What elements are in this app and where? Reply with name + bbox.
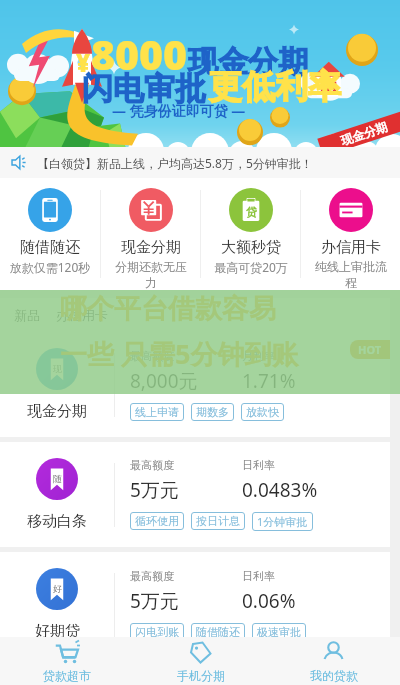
button[interactable]: 贷 [201,188,300,290]
staticText: 1分钟审批 [257,514,308,529]
staticText: HOT [358,342,382,357]
staticText: 新品 [14,307,40,323]
button[interactable]: 随借随还 [0,188,100,290]
staticText: 0.06% [242,588,296,614]
staticText: 日利率 [242,458,275,472]
staticText: 闪电审批 [82,69,206,108]
staticText: 手机分期 [177,668,225,683]
staticText: 5万元 [130,477,179,503]
staticText: 极速审批 [257,625,301,639]
staticText: 随借随还 [196,625,240,639]
button[interactable]: 好 [0,552,390,657]
staticText: 现金分期 [27,402,87,421]
staticText: 最高额度 [130,349,174,363]
staticText: 最高可贷20万 [210,259,292,275]
staticText: 日利率 [242,569,275,583]
staticText: 哪个平台借款容易 [60,292,276,326]
staticText: 最高额度 [130,569,174,583]
other: 公告 [11,154,28,171]
staticText: 更低利率 [209,66,341,108]
button[interactable]: 贷款超市 [0,637,134,685]
staticText: 5万元 [130,588,179,614]
button[interactable]: 公告 [0,147,400,178]
staticText: 循环使用 [135,514,179,528]
button[interactable]: 我的贷款 [267,637,400,685]
staticText: 现金分期 [121,238,181,257]
staticText: 分期还款无压力 [110,259,192,290]
staticText: 好期贷 [35,622,80,641]
staticText: 随 [53,473,62,484]
staticText: 放款仅需120秒 [9,259,91,275]
staticText: 大额秒贷 [221,238,281,257]
staticText: 随借随还 [20,238,80,257]
staticText: 8,000元 [130,368,198,394]
staticText: 【白领贷】新品上线，户均高达5.8万，5分钟审批！ [37,155,313,171]
button[interactable]: 办信用卡 [301,188,400,290]
staticText: 月利率 [242,349,275,363]
staticText: 现 [53,363,62,374]
staticText: 贷款超市 [43,668,91,683]
staticText: 现金分期 [339,119,389,148]
other: 我的贷款 [321,640,346,665]
staticText: 闪电到账 [135,625,179,639]
staticText: 一些 只需5分钟到账 [60,335,299,372]
staticText: 现金分期 [188,43,308,81]
staticText: 我的贷款 [310,668,358,683]
button[interactable]: 随 [0,442,390,547]
staticText: 贷 [246,205,257,219]
staticText: 0.0483% [242,477,318,503]
staticText: 好 [53,583,62,594]
staticText: 1.71% [242,368,296,394]
button[interactable]: 现 [0,332,390,437]
staticText: 线上申请 [135,405,179,419]
staticText: 移动白条 [27,512,87,531]
button[interactable]: 新品 [0,298,390,332]
staticText: 放款快 [246,405,279,419]
staticText: 办信用卡 [56,307,108,323]
staticText: 最高额度 [130,458,174,472]
button[interactable]: 手机分期 [134,637,267,685]
staticText: 纯线上审批流程 [310,259,392,290]
staticText: ¥ [76,46,91,79]
staticText: — 凭身份证即可贷 — [112,101,246,120]
staticText: 期数多 [196,405,229,419]
button[interactable]: 现金分期 [101,188,200,290]
button[interactable]: ¥ [0,0,400,147]
staticText: 按日计息 [196,514,240,528]
staticText: 8000 [91,26,188,82]
other: 手机分期 [188,640,213,665]
staticText: 办信用卡 [321,238,381,257]
other: 贷款超市 [55,640,80,665]
